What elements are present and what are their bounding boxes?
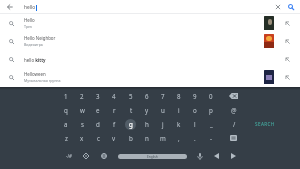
staticText: hello: [24, 4, 36, 11]
button[interactable]: English: [118, 154, 187, 159]
button[interactable]: y: [139, 104, 155, 116]
button[interactable]: hello kitty: [0, 50, 300, 68]
button[interactable]: /: [226, 118, 242, 130]
button[interactable]: t: [123, 104, 139, 116]
button[interactable]: 9: [187, 90, 203, 102]
staticText: a: [64, 120, 68, 128]
staticText: SEARCH: [255, 121, 275, 127]
button[interactable]: w: [74, 104, 90, 116]
button[interactable]: d: [90, 118, 106, 130]
button[interactable]: [101, 153, 107, 159]
button[interactable]: b: [123, 132, 139, 144]
button[interactable]: p: [203, 104, 219, 116]
staticText: x: [80, 134, 84, 142]
staticText: v: [112, 134, 116, 142]
button[interactable]: r: [106, 104, 122, 116]
button[interactable]: l: [187, 118, 203, 130]
button[interactable]: n: [139, 132, 155, 144]
button[interactable]: 4: [106, 90, 122, 102]
button[interactable]: _: [203, 118, 219, 130]
staticText: hello kitty: [24, 57, 46, 63]
staticText: Hello Neighbor: [24, 35, 56, 41]
staticText: 8: [177, 92, 181, 100]
staticText: q: [64, 106, 68, 114]
staticText: u: [161, 106, 165, 114]
button[interactable]: o: [187, 104, 203, 116]
staticText: Музыкальная группа: [24, 78, 61, 83]
button[interactable]: [285, 39, 290, 44]
button[interactable]: 1: [58, 90, 74, 102]
staticText: b: [129, 134, 133, 142]
button[interactable]: 6: [139, 90, 155, 102]
button[interactable]: j: [155, 118, 171, 130]
staticText: o: [193, 106, 197, 114]
staticText: n: [145, 134, 149, 142]
button[interactable]: [229, 93, 238, 99]
button[interactable]: [231, 153, 236, 159]
button[interactable]: SEARCH: [246, 119, 284, 129]
button[interactable]: h: [139, 118, 155, 130]
staticText: @: [231, 106, 237, 114]
button[interactable]: v: [106, 132, 122, 144]
button[interactable]: [285, 57, 290, 62]
staticText: Трек: [24, 24, 32, 29]
staticText: -: [210, 134, 212, 142]
button[interactable]: m: [155, 132, 171, 144]
staticText: l: [194, 120, 196, 128]
button[interactable]: e: [90, 104, 106, 116]
button[interactable]: a: [58, 118, 74, 130]
staticText: y: [145, 106, 149, 114]
button[interactable]: [285, 75, 290, 80]
button[interactable]: c: [90, 132, 106, 144]
button[interactable]: Hello: [0, 14, 300, 32]
staticText: Видеоигра: [24, 42, 43, 47]
staticText: t: [130, 106, 133, 114]
staticText: j: [162, 120, 164, 128]
staticText: ,: [178, 134, 180, 142]
staticText: m: [160, 134, 166, 142]
staticText: h: [145, 120, 149, 128]
button[interactable]: 8: [171, 90, 187, 102]
button[interactable]: x: [74, 132, 90, 144]
staticText: Hello: [24, 17, 35, 23]
button[interactable]: Hello Neighbor: [0, 32, 300, 50]
button[interactable]: [230, 135, 237, 141]
button[interactable]: 7: [155, 90, 171, 102]
staticText: e: [96, 106, 100, 114]
staticText: 0: [209, 92, 213, 100]
staticText: c: [97, 134, 100, 142]
button[interactable]: [197, 153, 203, 160]
button[interactable]: q: [58, 104, 74, 116]
button[interactable]: .: [187, 132, 203, 144]
button[interactable]: 5: [123, 90, 139, 102]
button[interactable]: Helloween: [0, 68, 300, 86]
button[interactable]: -/#: [61, 150, 77, 162]
button[interactable]: k: [171, 118, 187, 130]
button[interactable]: 0: [203, 90, 219, 102]
button[interactable]: z: [58, 132, 74, 144]
button[interactable]: -: [203, 132, 219, 144]
staticText: 5: [129, 92, 133, 100]
staticText: 4: [112, 92, 116, 100]
staticText: f: [113, 120, 116, 128]
button[interactable]: s: [74, 118, 90, 130]
button[interactable]: [214, 153, 219, 159]
button[interactable]: 3: [90, 90, 106, 102]
button[interactable]: [275, 4, 281, 10]
staticText: /: [233, 120, 236, 128]
button[interactable]: i: [171, 104, 187, 116]
staticText: d: [96, 120, 100, 128]
staticText: 7: [161, 92, 165, 100]
button[interactable]: [285, 21, 290, 26]
staticText: k: [177, 120, 181, 128]
staticText: -/#: [66, 153, 73, 159]
button[interactable]: [83, 153, 89, 159]
button[interactable]: f: [106, 118, 122, 130]
button[interactable]: ,: [171, 132, 187, 144]
button[interactable]: 2: [74, 90, 90, 102]
staticText: _: [210, 120, 213, 128]
button[interactable]: g: [123, 118, 139, 130]
button[interactable]: u: [155, 104, 171, 116]
button[interactable]: [7, 4, 13, 10]
button[interactable]: @: [226, 104, 242, 116]
